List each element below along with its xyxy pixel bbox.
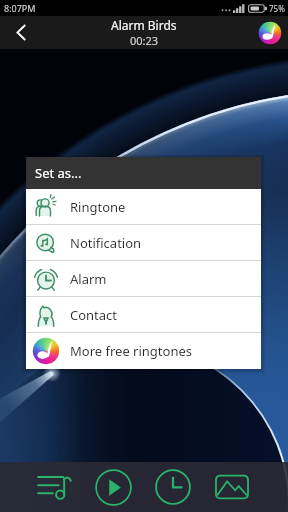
button[interactable]: Wallpaper: [202, 462, 261, 512]
button[interactable]: Notification: [26, 225, 261, 261]
staticText: Alarm: [70, 270, 107, 288]
staticText: Set as...: [35, 164, 82, 182]
button[interactable]: More free ringtones: [26, 333, 261, 369]
staticText: 8:07PM: [4, 2, 36, 14]
staticText: Notification: [70, 234, 142, 252]
staticText: More free ringtones: [70, 342, 193, 360]
button[interactable]: Playlist: [26, 462, 84, 512]
button[interactable]: Play: [84, 462, 143, 512]
button[interactable]: Alarm: [26, 261, 261, 297]
staticText: 75%: [269, 3, 285, 14]
staticText: Alarm Birds: [111, 17, 177, 33]
staticText: Contact: [70, 306, 118, 324]
button[interactable]: Contact: [26, 297, 261, 333]
staticText: 00:23: [130, 33, 159, 48]
button[interactable]: Back: [0, 16, 42, 49]
button[interactable]: Clock: [143, 462, 202, 512]
button[interactable]: App logo: [258, 21, 282, 45]
staticText: Ringtone: [70, 198, 126, 216]
button[interactable]: Ringtone: [26, 189, 261, 225]
